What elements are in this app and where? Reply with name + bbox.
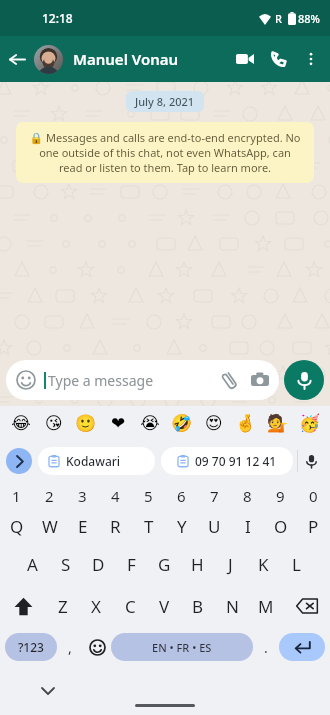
button[interactable]: 🔒 Messages and calls are end-to-end encr…: [16, 122, 314, 183]
button[interactable]: C: [113, 585, 147, 627]
button[interactable]: 🤣: [166, 406, 198, 440]
button[interactable]: D: [82, 543, 115, 585]
button[interactable]: G: [148, 543, 181, 585]
staticText: X: [91, 595, 101, 618]
staticText: H: [191, 553, 204, 576]
staticText: 🥳: [299, 413, 321, 433]
staticText: 🤣: [171, 413, 193, 433]
button[interactable]: Kodawari Ra…: [38, 447, 155, 475]
button[interactable]: V: [147, 585, 181, 627]
button[interactable]: T: [132, 509, 165, 543]
button[interactable]: L: [280, 543, 313, 585]
button[interactable]: 9: [264, 482, 297, 509]
button[interactable]: Emoji keyboard: [83, 627, 111, 667]
button[interactable]: 😭: [134, 406, 166, 440]
button[interactable]: Enter: [279, 633, 325, 661]
staticText: Y: [177, 515, 187, 538]
staticText: M: [258, 595, 274, 618]
button[interactable]: 4: [99, 482, 132, 509]
button[interactable]: ,: [57, 627, 83, 667]
button[interactable]: 7: [198, 482, 231, 509]
staticText: 9: [276, 486, 285, 506]
staticText: C: [125, 595, 136, 618]
button[interactable]: 🤞: [230, 406, 262, 440]
button[interactable]: Video call: [228, 42, 262, 76]
staticText: F: [127, 553, 136, 576]
button[interactable]: Manuel Vonau: [73, 49, 228, 69]
button[interactable]: July 8, 2021: [126, 91, 204, 112]
staticText: S: [61, 553, 71, 576]
button[interactable]: U: [198, 509, 231, 543]
button[interactable]: B: [181, 585, 215, 627]
staticText: 😭: [140, 413, 160, 433]
button[interactable]: 8: [231, 482, 264, 509]
button[interactable]: 0: [297, 482, 330, 509]
staticText: Kodawari Ra…: [66, 453, 145, 469]
button[interactable]: Hide keyboard: [38, 681, 58, 701]
button[interactable]: X: [79, 585, 113, 627]
staticText: 😘: [45, 413, 63, 433]
button[interactable]: Y: [165, 509, 198, 543]
staticText: 2: [45, 486, 54, 506]
button[interactable]: W: [33, 509, 66, 543]
button[interactable]: F: [115, 543, 148, 585]
button[interactable]: Q: [0, 509, 33, 543]
button[interactable]: Profile photo: [34, 45, 63, 74]
staticText: July 8, 2021: [135, 94, 195, 109]
button[interactable]: Backspace: [283, 585, 330, 627]
button[interactable]: 1: [0, 482, 33, 509]
staticText: D: [92, 553, 105, 576]
button[interactable]: Voice call: [262, 42, 296, 76]
staticText: K: [258, 553, 269, 576]
staticText: 3: [78, 486, 87, 506]
button[interactable]: Back: [0, 42, 34, 76]
button[interactable]: 5: [132, 482, 165, 509]
button[interactable]: Z: [46, 585, 79, 627]
staticText: 0: [309, 486, 318, 506]
staticText: 😂: [11, 413, 31, 433]
staticText: J: [228, 553, 233, 576]
button[interactable]: 😍: [198, 406, 230, 440]
button[interactable]: Shift: [0, 585, 46, 627]
button[interactable]: Expand suggestions: [6, 448, 32, 474]
staticText: 09 70 91 12 41: [195, 453, 277, 469]
button[interactable]: 3: [66, 482, 99, 509]
button[interactable]: K: [247, 543, 280, 585]
button[interactable]: .: [253, 627, 279, 667]
button[interactable]: I: [231, 509, 264, 543]
button[interactable]: 🙂: [70, 406, 102, 440]
button[interactable]: 2: [33, 482, 66, 509]
staticText: O: [274, 515, 288, 538]
other: Emoji: [16, 370, 36, 390]
button[interactable]: ❤️: [102, 406, 134, 440]
button[interactable]: 6: [165, 482, 198, 509]
staticText: A: [27, 553, 38, 576]
button[interactable]: Record voice message: [284, 360, 324, 400]
button[interactable]: R: [99, 509, 132, 543]
button[interactable]: M: [249, 585, 283, 627]
button[interactable]: H: [181, 543, 214, 585]
button[interactable]: 😘: [37, 406, 70, 440]
button[interactable]: Emoji: [6, 360, 279, 400]
button[interactable]: 🥳: [294, 406, 326, 440]
button[interactable]: N: [215, 585, 249, 627]
staticText: E: [78, 515, 88, 538]
button[interactable]: EN • FR • ES: [111, 633, 253, 661]
button[interactable]: 09 70 91 12 41: [161, 447, 293, 475]
button[interactable]: 💁: [262, 406, 294, 440]
button[interactable]: 😂: [4, 406, 37, 440]
button[interactable]: A: [16, 543, 49, 585]
staticText: 88%: [298, 11, 320, 26]
button[interactable]: O: [264, 509, 297, 543]
other: Attach: [220, 371, 239, 390]
button[interactable]: ?123: [5, 633, 57, 661]
button[interactable]: Voice input: [298, 448, 324, 474]
staticText: 😍: [205, 413, 223, 433]
other: Camera: [251, 371, 269, 389]
button[interactable]: E: [66, 509, 99, 543]
staticText: V: [159, 595, 170, 618]
button[interactable]: More options: [296, 44, 326, 74]
button[interactable]: P: [297, 509, 330, 543]
button[interactable]: S: [49, 543, 82, 585]
button[interactable]: J: [214, 543, 247, 585]
